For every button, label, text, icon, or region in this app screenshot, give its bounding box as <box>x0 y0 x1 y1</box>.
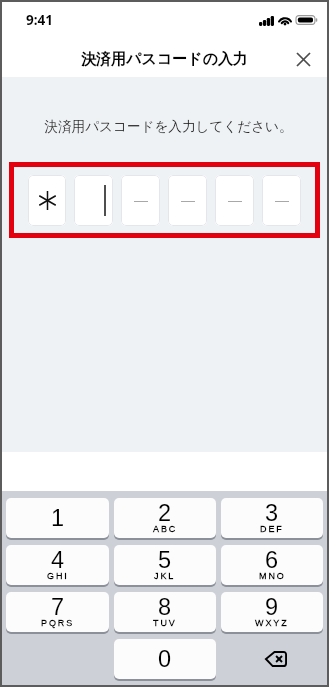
staticText: 9 <box>265 594 279 620</box>
staticText: 1 <box>51 505 65 531</box>
staticText: 8 <box>158 594 172 620</box>
button[interactable] <box>262 175 301 226</box>
staticText: WXYZ <box>255 618 289 628</box>
staticText: GHI <box>47 571 69 581</box>
button[interactable]: 5 <box>114 545 216 585</box>
staticText: DEF <box>260 524 284 534</box>
staticText: 6 <box>265 547 279 573</box>
staticText: JKL <box>154 571 176 581</box>
staticText: 3 <box>265 500 279 526</box>
staticText: 決済用パスコードの入力 <box>81 50 248 69</box>
staticText: MNO <box>259 571 286 581</box>
button[interactable]: 6 <box>221 545 323 585</box>
button[interactable] <box>168 175 207 226</box>
button[interactable]: Close <box>287 43 319 75</box>
staticText: 9:41 <box>26 11 53 29</box>
button[interactable]: 2 <box>114 498 216 538</box>
staticText: ABC <box>153 524 178 534</box>
staticText: 4 <box>51 547 65 573</box>
button[interactable]: 9 <box>221 592 323 632</box>
button[interactable]: 8 <box>114 592 216 632</box>
button[interactable] <box>215 175 254 226</box>
staticText: PQRS <box>41 618 75 628</box>
staticText: 決済用パスコードを入力してください。 <box>6 118 329 135</box>
staticText: 7 <box>51 594 65 620</box>
staticText: 0 <box>158 646 172 672</box>
button[interactable]: 7 <box>6 592 109 632</box>
button[interactable]: 1 <box>6 498 109 538</box>
button[interactable]: 0 <box>114 639 216 679</box>
staticText: TUV <box>153 618 177 628</box>
button[interactable]: 4 <box>6 545 109 585</box>
button[interactable]: Backspace <box>221 639 323 679</box>
button[interactable]: 3 <box>221 498 323 538</box>
button[interactable] <box>121 175 160 226</box>
staticText: 2 <box>158 500 172 526</box>
staticText: 5 <box>158 547 172 573</box>
button[interactable] <box>28 175 66 226</box>
button[interactable] <box>74 175 113 226</box>
